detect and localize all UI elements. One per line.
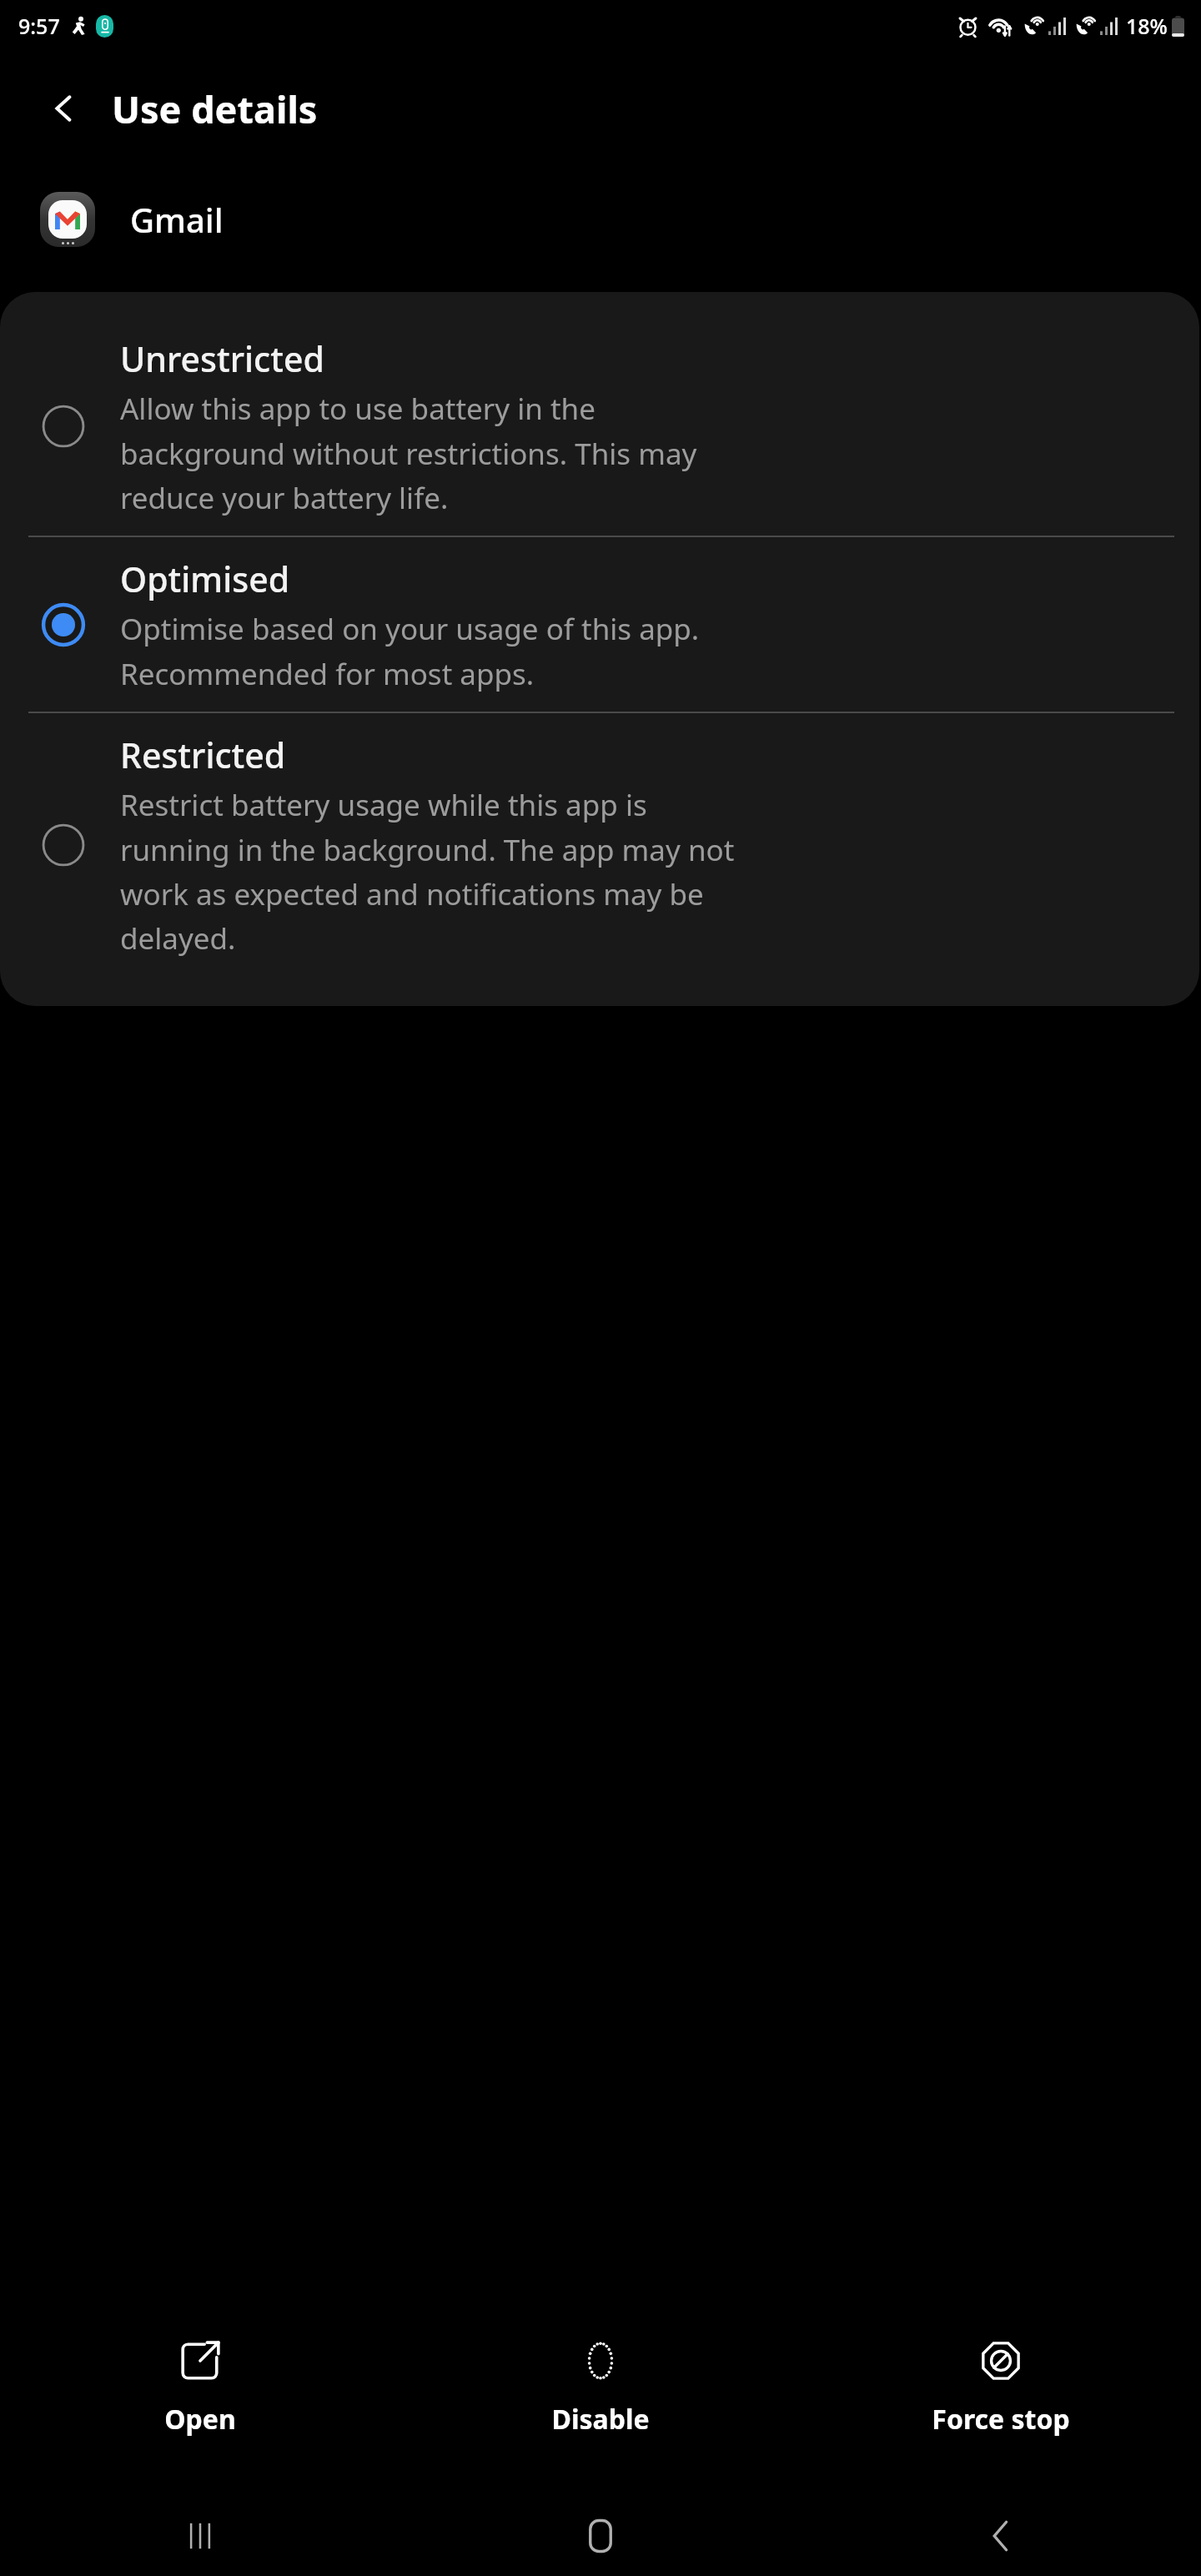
- button[interactable]: Optimised: [0, 537, 1199, 712]
- button[interactable]: Force stop: [801, 2309, 1201, 2468]
- staticText: Use details: [112, 83, 318, 134]
- staticText: 9:57: [18, 12, 60, 40]
- button[interactable]: Unrestricted: [0, 317, 1199, 536]
- button[interactable]: Back: [801, 2496, 1201, 2576]
- staticText: Force stop: [932, 2401, 1070, 2438]
- staticText: Optimise based on your usage of this app…: [120, 609, 700, 693]
- staticText: Open: [164, 2401, 236, 2438]
- staticText: Allow this app to use battery in the bac…: [120, 389, 697, 517]
- button[interactable]: Home: [400, 2496, 801, 2576]
- staticText: Restricted: [120, 732, 286, 778]
- button[interactable]: Restricted: [0, 713, 1199, 976]
- staticText: 18%: [1126, 12, 1168, 40]
- staticText: Gmail: [130, 197, 224, 242]
- staticText: Disable: [551, 2401, 650, 2438]
- staticText: Optimised: [120, 556, 290, 602]
- staticText: Restrict battery usage while this app is…: [120, 785, 735, 958]
- button[interactable]: Back: [28, 73, 100, 144]
- button[interactable]: Disable: [400, 2309, 801, 2468]
- button[interactable]: Open: [0, 2309, 400, 2468]
- button[interactable]: Recents: [0, 2496, 400, 2576]
- staticText: Unrestricted: [120, 335, 324, 382]
